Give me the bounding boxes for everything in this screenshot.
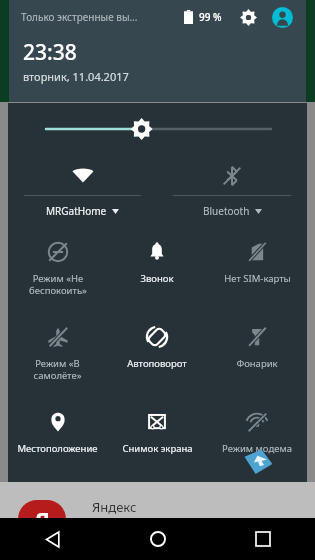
button[interactable]: Фонарик	[207, 312, 307, 397]
button[interactable]: Автоповорот	[107, 312, 207, 397]
button[interactable]: Звонок	[107, 227, 207, 312]
staticText: 23:38	[23, 38, 77, 67]
staticText: Снимок экрана	[122, 442, 193, 455]
staticText: MRGatHome	[46, 204, 107, 218]
button[interactable]: Settings	[236, 5, 260, 29]
staticText: вторник, 11.04.2017	[23, 69, 129, 84]
button[interactable]: Местоположение	[8, 397, 107, 482]
staticText: Только экстренные вы…	[21, 10, 184, 24]
staticText: Яндекс	[92, 498, 137, 516]
button[interactable]: Home	[105, 518, 210, 560]
staticText: Я	[35, 504, 50, 534]
button[interactable]: Bluetooth	[157, 155, 307, 218]
button[interactable]: Режим модема	[207, 397, 307, 482]
button[interactable]: User	[270, 5, 294, 29]
button[interactable]: Режим «Не беспокоить»	[8, 227, 107, 312]
staticText: Нет SIM-карты	[224, 272, 291, 285]
button[interactable]: Back	[0, 518, 105, 560]
staticText: Режим «Не беспокоить»	[29, 272, 87, 297]
button[interactable]: Recents	[210, 518, 315, 560]
staticText: Местоположение	[17, 442, 98, 455]
staticText: Режим «В самолёте»	[33, 357, 82, 382]
staticText: 99 %	[199, 10, 222, 24]
staticText: Автоповорот	[127, 357, 187, 370]
button[interactable]: Нет SIM-карты	[207, 227, 307, 312]
button[interactable]: MRGatHome	[8, 155, 157, 218]
staticText: Фонарик	[236, 357, 278, 370]
button[interactable]: Brightness	[8, 103, 307, 155]
staticText: Режим модема	[222, 442, 292, 455]
staticText: Bluetooth	[203, 204, 250, 218]
staticText: Звонок	[140, 272, 174, 285]
button[interactable]: Режим «В самолёте»	[8, 312, 107, 397]
button[interactable]: Снимок экрана	[107, 397, 207, 482]
